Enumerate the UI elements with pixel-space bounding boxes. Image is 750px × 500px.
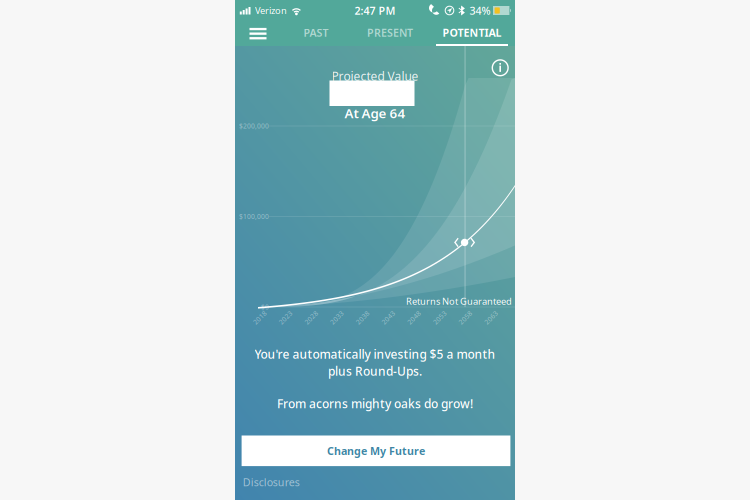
- staticText: Disclosures: [243, 475, 300, 489]
- staticText: 2048: [406, 313, 422, 322]
- staticText: 2038: [355, 313, 371, 322]
- staticText: 2023: [278, 313, 294, 322]
- staticText: At Age 64: [344, 104, 405, 122]
- button[interactable]: PAST: [281, 21, 351, 46]
- staticText: PAST: [303, 25, 328, 40]
- button[interactable]: Change My Future: [242, 435, 510, 466]
- staticText: plus Round-Ups.: [328, 363, 422, 379]
- staticText: $0: [261, 303, 269, 311]
- staticText: From acorns mighty oaks do grow!: [277, 395, 473, 411]
- staticText: $200,000: [239, 122, 269, 130]
- staticText: POTENTIAL: [442, 25, 501, 40]
- staticText: 2043: [380, 313, 396, 322]
- button[interactable]: PRESENT: [351, 21, 429, 46]
- staticText: 34%: [469, 3, 490, 18]
- button[interactable]: Disclosures: [243, 476, 300, 488]
- staticText: 2063: [483, 313, 499, 322]
- staticText: Verizon: [255, 4, 287, 17]
- button[interactable]: Menu: [235, 21, 281, 46]
- staticText: 2053: [432, 313, 448, 322]
- button[interactable]: Information: [485, 53, 515, 83]
- staticText: Change My Future: [327, 444, 425, 458]
- staticText: 2028: [303, 313, 319, 322]
- staticText: 2058: [457, 313, 473, 322]
- staticText: 2018: [252, 313, 268, 322]
- staticText: Returns Not Guaranteed: [406, 295, 512, 307]
- staticText: PRESENT: [367, 25, 413, 40]
- staticText: 2:47 PM: [354, 3, 395, 18]
- staticText: You're automatically investing $5 a mont…: [254, 346, 495, 362]
- staticText: $100,000: [239, 212, 269, 221]
- staticText: Projected Value: [331, 68, 418, 84]
- staticText: 2033: [329, 313, 345, 322]
- button[interactable]: POTENTIAL: [429, 21, 515, 46]
